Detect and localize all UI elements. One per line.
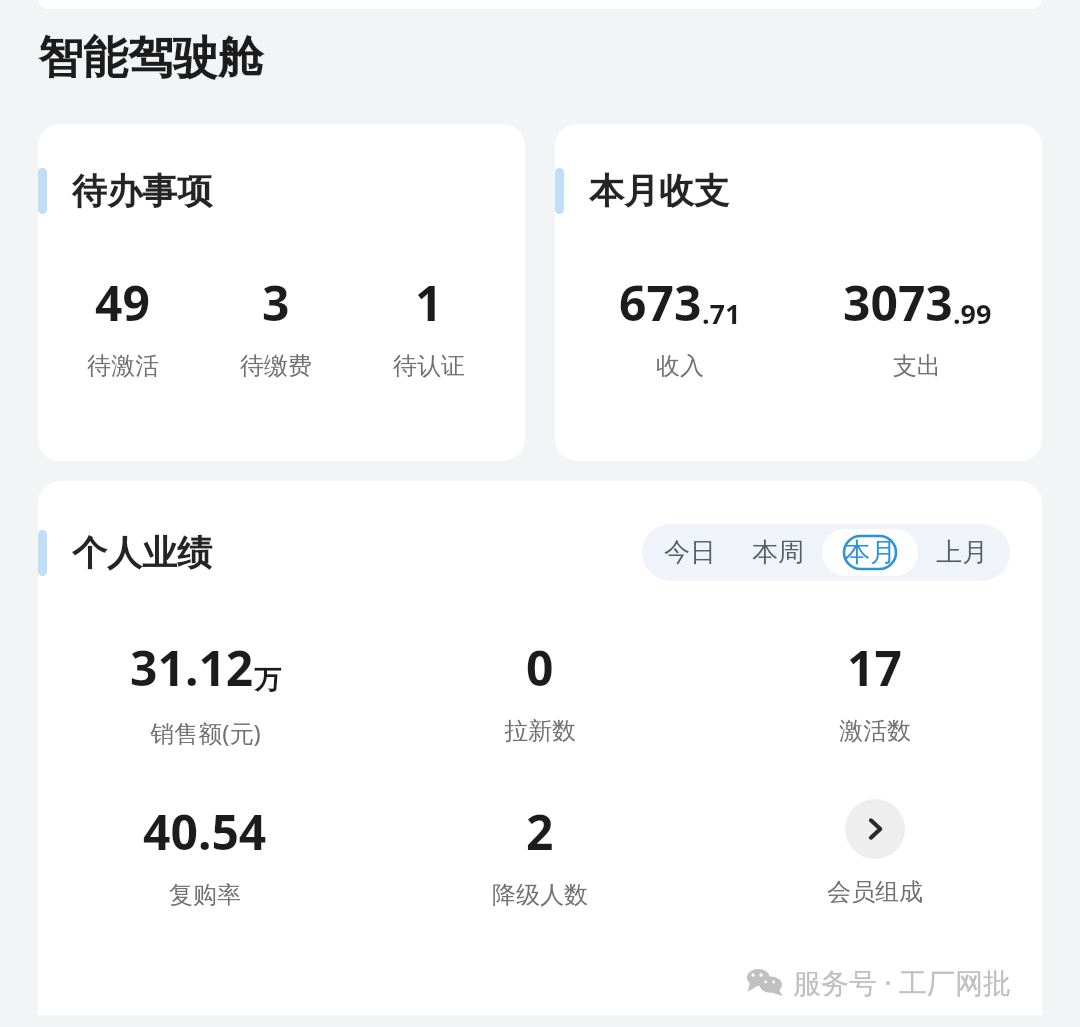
button[interactable]: 3 bbox=[199, 270, 352, 381]
staticText: 待激活 bbox=[87, 351, 159, 381]
staticText: 降级人数 bbox=[492, 880, 588, 910]
staticText: 会员组成 bbox=[827, 877, 923, 907]
staticText: 上月 bbox=[936, 536, 988, 569]
button[interactable]: 673 bbox=[561, 270, 798, 381]
button[interactable]: 1 bbox=[352, 270, 505, 381]
button[interactable]: 0 bbox=[372, 635, 707, 746]
staticText: 1 bbox=[415, 270, 443, 335]
staticText: 2 bbox=[526, 799, 554, 864]
staticText: 智能驾驶舱 bbox=[38, 30, 263, 87]
button[interactable]: 31.12 bbox=[38, 635, 372, 749]
button[interactable]: 查看会员组成 bbox=[707, 799, 1042, 907]
button[interactable]: 17 bbox=[707, 635, 1042, 746]
button[interactable]: 本月 bbox=[822, 529, 918, 576]
staticText: 31.12 bbox=[130, 635, 254, 700]
button[interactable]: 2 bbox=[372, 799, 707, 910]
staticText: 本周 bbox=[752, 536, 804, 569]
staticText: .71 bbox=[702, 295, 741, 332]
staticText: 销售额(元) bbox=[150, 716, 261, 749]
staticText: 3 bbox=[262, 270, 290, 335]
button[interactable]: 3073 bbox=[798, 270, 1036, 381]
staticText: 拉新数 bbox=[504, 716, 576, 746]
button[interactable]: 本月收支 bbox=[555, 124, 1042, 461]
staticText: .99 bbox=[953, 295, 992, 332]
staticText: 今日 bbox=[664, 536, 716, 569]
staticText: 本月收支 bbox=[589, 169, 729, 213]
staticText: 40.54 bbox=[143, 799, 267, 864]
staticText: 待缴费 bbox=[240, 351, 312, 381]
button[interactable]: 查看会员组成 bbox=[845, 799, 905, 859]
staticText: 49 bbox=[95, 270, 150, 335]
button[interactable]: 待办事项 bbox=[38, 124, 525, 461]
staticText: 本月 bbox=[844, 536, 896, 569]
staticText: 17 bbox=[847, 635, 902, 700]
button[interactable]: 40.54 bbox=[38, 799, 372, 910]
staticText: 万 bbox=[254, 663, 281, 697]
staticText: 个人业绩 bbox=[72, 531, 212, 575]
button[interactable]: 今日 bbox=[646, 529, 734, 576]
staticText: 673 bbox=[619, 270, 702, 335]
staticText: 待认证 bbox=[393, 351, 465, 381]
staticText: 支出 bbox=[893, 351, 941, 381]
button[interactable]: 上月 bbox=[918, 529, 1006, 576]
staticText: 0 bbox=[526, 635, 554, 700]
staticText: 服务号 · 工厂网批 bbox=[793, 963, 1012, 1001]
staticText: 收入 bbox=[656, 351, 704, 381]
staticText: 待办事项 bbox=[72, 169, 212, 213]
staticText: 复购率 bbox=[169, 880, 241, 910]
button[interactable]: 49 bbox=[46, 270, 199, 381]
button[interactable]: 本周 bbox=[734, 529, 822, 576]
staticText: 3073 bbox=[843, 270, 953, 335]
staticText: 激活数 bbox=[839, 716, 911, 746]
